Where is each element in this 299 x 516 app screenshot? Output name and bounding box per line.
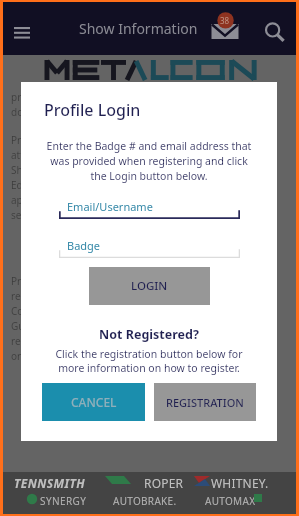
staticText: Not Registered? — [21, 326, 277, 343]
button[interactable]: Open navigation menu — [0, 7, 43, 50]
button[interactable]: Messages, 38 unread — [203, 7, 247, 51]
button[interactable]: Email/Username — [59, 199, 240, 219]
staticText: Badge — [67, 238, 101, 253]
staticText: LOGIN — [131, 278, 168, 294]
staticText: TENNSMITH — [14, 475, 86, 491]
button[interactable]: CANCEL — [42, 383, 145, 421]
staticText: CANCEL — [71, 394, 117, 410]
button[interactable]: Search — [254, 10, 297, 53]
staticText: SYNERGY — [40, 494, 87, 508]
button[interactable]: Badge — [59, 238, 240, 258]
staticText: Click the registration button below for … — [21, 347, 277, 375]
button[interactable]: LOGIN — [89, 267, 210, 305]
button[interactable]: REGISTRATION — [154, 383, 256, 421]
staticText: 38 — [220, 15, 230, 26]
staticText: Email/Username — [67, 199, 153, 214]
staticText: AUTOMAX — [205, 494, 256, 508]
staticText: AUTOBRAKE. — [113, 494, 177, 508]
staticText: ROPER — [144, 475, 184, 491]
staticText: Profile login gives access to your perso… — [11, 274, 221, 363]
staticText: Enter the Badge # and email address that… — [21, 139, 277, 183]
staticText: Profile Login — [44, 99, 141, 121]
staticText: REGISTRATION — [166, 395, 244, 410]
staticText: presented by the Metal Construction Asso… — [11, 90, 239, 119]
staticText: WHITNEY. — [211, 475, 269, 491]
staticText: Prepare for your visit and make the most… — [11, 133, 225, 222]
staticText: Show Information — [79, 19, 198, 38]
